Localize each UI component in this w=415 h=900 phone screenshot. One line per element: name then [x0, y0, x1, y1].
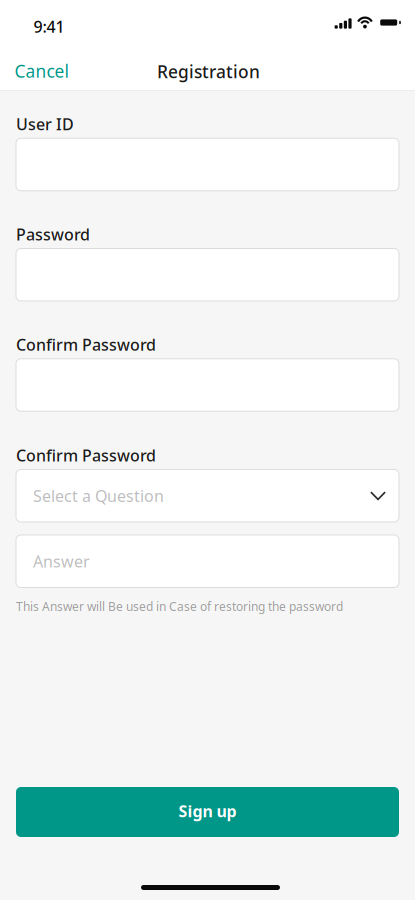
button[interactable]: Password: [16, 248, 399, 301]
staticText: Sign up: [178, 800, 236, 822]
staticText: Registration: [157, 60, 260, 83]
button[interactable]: Sign up: [16, 787, 399, 837]
staticText: Cancel: [14, 59, 68, 82]
staticText: Select a Question: [33, 485, 164, 506]
staticText: Confirm Password: [16, 334, 156, 355]
staticText: 9:41: [33, 16, 64, 37]
staticText: Answer: [33, 551, 90, 572]
button[interactable]: User ID: [16, 138, 399, 191]
staticText: Password: [16, 224, 90, 245]
staticText: User ID: [16, 113, 74, 135]
staticText: Confirm Password: [16, 445, 156, 466]
button[interactable]: Cancel: [0, 47, 80, 86]
staticText: This Answer will Be used in Case of rest…: [16, 598, 343, 614]
button[interactable]: Answer: [16, 535, 399, 587]
button[interactable]: Security question: [16, 469, 399, 522]
